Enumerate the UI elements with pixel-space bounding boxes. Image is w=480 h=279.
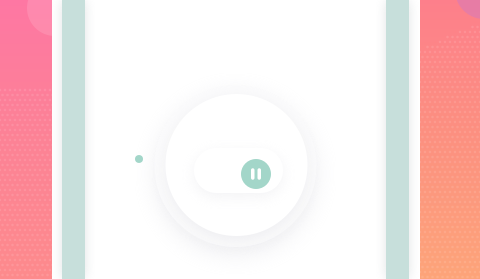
button[interactable]: Pause	[194, 148, 283, 193]
